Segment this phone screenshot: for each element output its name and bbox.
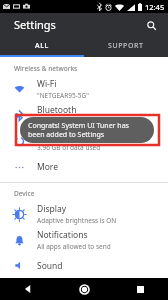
staticText: Settings — [14, 17, 56, 32]
button[interactable]: More — [0, 154, 168, 180]
staticText: More — [37, 161, 58, 173]
button[interactable]: Sound — [0, 253, 168, 278]
button[interactable]: SUPPORT — [84, 36, 168, 55]
button[interactable]: Search — [142, 16, 160, 34]
button[interactable]: Notifications — [0, 227, 168, 253]
staticText: Adaptive brightness is ON — [37, 216, 117, 225]
staticText: Wireless & networks — [14, 64, 78, 73]
staticText: 3.96 GB of data used — [37, 143, 101, 152]
staticText: Device — [14, 189, 35, 198]
staticText: Congrats! System UI Tuner has been added… — [28, 121, 146, 139]
staticText: Notifications — [37, 229, 88, 241]
staticText: Wi-Fi — [37, 78, 57, 90]
staticText: Sound — [37, 260, 63, 272]
staticText: All apps allowed to send — [37, 242, 111, 251]
staticText: Disconnected — [37, 117, 79, 126]
staticText: 12:45 — [145, 2, 165, 12]
button[interactable]: Bluetooth — [0, 102, 168, 128]
button[interactable]: Back — [17, 278, 39, 300]
button[interactable]: Display — [0, 201, 168, 227]
button[interactable]: Recent apps — [129, 278, 151, 300]
staticText: Display — [37, 203, 66, 215]
button[interactable]: Home — [73, 278, 95, 300]
button[interactable]: Wi-Fi — [0, 76, 168, 102]
button[interactable]: ALL — [0, 36, 84, 55]
staticText: Data usage — [37, 130, 83, 142]
staticText: SUPPORT — [108, 41, 144, 51]
staticText: Bluetooth — [37, 104, 77, 116]
button[interactable]: Data usage — [0, 128, 168, 154]
staticText: "NETGEAR95-5G" — [37, 91, 89, 100]
staticText: ALL — [35, 41, 49, 51]
